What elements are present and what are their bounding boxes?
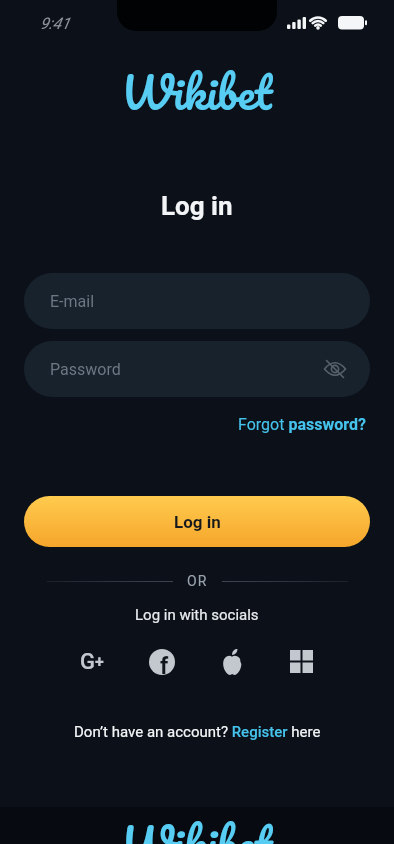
staticText: OR [187, 573, 208, 589]
staticText: Password [50, 360, 121, 379]
button[interactable] [212, 649, 252, 675]
button[interactable] [282, 649, 322, 675]
staticText: E-mail [50, 292, 95, 311]
staticText: Forgot password? [238, 415, 366, 434]
button[interactable]: Log in [24, 496, 370, 547]
staticText: G [80, 649, 95, 675]
staticText: 9:41 [40, 14, 70, 33]
button[interactable]: f [142, 649, 182, 675]
staticText: Wikibet [121, 54, 273, 130]
button[interactable]: E-mail [24, 273, 370, 329]
staticText: Log in [161, 191, 233, 221]
button[interactable]: Password [24, 341, 370, 397]
staticText: Log in with socials [135, 606, 259, 624]
staticText: Wikibet [121, 805, 273, 844]
staticText: Log in [174, 512, 221, 532]
button[interactable]: G [72, 649, 112, 675]
staticText: f [160, 653, 169, 675]
staticText: Don’t have an account? Register here [74, 723, 321, 741]
button[interactable]: Don’t have an account? Register here [74, 723, 321, 741]
staticText: + [95, 652, 104, 671]
button[interactable]: Forgot password? [238, 415, 366, 434]
